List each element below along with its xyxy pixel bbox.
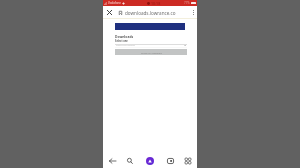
staticText: Downloads bbox=[115, 34, 134, 38]
button[interactable]: Show All Software bbox=[115, 49, 187, 55]
staticText: 10:18 bbox=[151, 1, 161, 6]
staticText: 77% bbox=[184, 1, 190, 5]
button[interactable]: More options bbox=[189, 6, 197, 19]
staticText: Show All Software bbox=[141, 51, 162, 54]
staticText: Select one bbox=[115, 39, 128, 42]
button[interactable]: Apps bbox=[180, 153, 196, 168]
button[interactable]: Search bbox=[122, 153, 138, 168]
staticText: Vodafone bbox=[108, 1, 121, 5]
staticText: Select your product bbox=[116, 44, 136, 47]
staticText: downloads.lowrance.co bbox=[125, 10, 176, 16]
button[interactable]: Home bbox=[142, 153, 158, 168]
button[interactable]: Select product bbox=[115, 44, 187, 48]
button[interactable]: Back bbox=[104, 153, 120, 168]
button[interactable]: Tabs bbox=[162, 153, 178, 168]
button[interactable]: Close bbox=[103, 6, 115, 19]
